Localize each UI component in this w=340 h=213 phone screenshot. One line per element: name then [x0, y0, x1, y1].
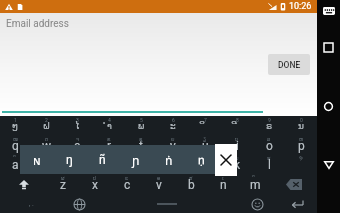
button[interactable]: ŋ: [53, 145, 86, 174]
staticText: o: [266, 139, 273, 153]
button[interactable]: Backspace: [271, 173, 317, 195]
button[interactable]: 9: [253, 116, 285, 135]
button[interactable]: ຮ: [253, 154, 285, 173]
button[interactable]: ຫ: [285, 135, 317, 154]
staticText: r: [107, 139, 112, 153]
button[interactable]: ຯ: [285, 154, 317, 173]
button[interactable]: ອ: [143, 173, 175, 195]
button[interactable]: ເ: [207, 173, 239, 195]
staticText: m: [250, 178, 261, 192]
button[interactable]: ຸ: [125, 154, 157, 173]
staticText: l: [268, 158, 271, 172]
button[interactable]: DONE: [268, 54, 310, 75]
staticText: ບ: [235, 136, 239, 142]
button[interactable]: ແ: [111, 173, 143, 195]
button[interactable]: ṅ: [152, 145, 185, 174]
staticText: t: [139, 139, 143, 153]
staticText: 6: [172, 117, 175, 123]
button[interactable]: 3: [62, 116, 93, 135]
staticText: ຜ: [61, 175, 65, 181]
staticText: ɴ: [33, 152, 41, 168]
button[interactable]: 5: [125, 116, 157, 135]
staticText: ຫ: [299, 136, 304, 142]
staticText: c: [124, 178, 131, 192]
button[interactable]: Back: [317, 154, 340, 175]
button[interactable]: ຖ: [189, 154, 221, 173]
button[interactable]: ລ: [253, 135, 285, 154]
button[interactable]: Hide keyboard: [317, 0, 340, 21]
button[interactable]: ຍ: [157, 135, 189, 154]
button[interactable]: ຕ: [31, 135, 62, 154]
staticText: x: [92, 178, 98, 192]
button[interactable]: ṇ: [185, 145, 218, 174]
button[interactable]: 7: [189, 116, 221, 135]
staticText: 9: [268, 117, 271, 123]
staticText: k: [234, 158, 241, 172]
staticText: ຍ: [171, 136, 175, 142]
button[interactable]: ຶ: [31, 154, 62, 173]
button[interactable]: 1: [0, 116, 31, 135]
staticText: ṇ: [198, 153, 205, 167]
staticText: 0: [300, 117, 303, 123]
button[interactable]: ມ: [221, 154, 253, 173]
button[interactable]: ຽ: [189, 135, 221, 154]
button[interactable]: ຈ: [62, 135, 93, 154]
staticText: ຊ: [139, 136, 143, 142]
button[interactable]: Enter: [277, 195, 317, 213]
button[interactable]: ັ: [62, 154, 93, 173]
staticText: ຕ: [45, 136, 49, 142]
staticText: 4: [108, 117, 111, 123]
button[interactable]: Emoji: [237, 195, 277, 213]
staticText: i: [236, 139, 239, 153]
staticText: ຳ: [107, 121, 112, 131]
staticText: ŋ: [66, 153, 73, 167]
staticText: ຣ: [266, 121, 273, 131]
button[interactable]: ູ: [93, 154, 125, 173]
button[interactable]: ຜ: [47, 173, 79, 195]
staticText: ມ: [235, 155, 239, 161]
button[interactable]: Recents: [317, 37, 340, 58]
button[interactable]: ɲ: [119, 145, 152, 174]
button[interactable]: 6: [157, 116, 189, 135]
staticText: ຝ: [43, 121, 50, 131]
staticText: 10:26: [289, 1, 312, 12]
staticText: ຂ: [107, 136, 111, 142]
button[interactable]: ປ: [79, 173, 111, 195]
staticText: v: [156, 178, 162, 192]
button[interactable]: Space: [96, 195, 237, 213]
button[interactable]: ñ: [86, 145, 119, 174]
button[interactable]: ບ: [221, 135, 253, 154]
button[interactable]: Shift: [0, 173, 47, 195]
button[interactable]: ົ: [239, 173, 271, 195]
button[interactable]: ສ: [175, 173, 207, 195]
button[interactable]: 0: [285, 116, 317, 135]
button[interactable]: Home: [317, 96, 340, 117]
staticText: n: [220, 178, 227, 192]
button[interactable]: ໜ: [0, 135, 31, 154]
button[interactable]: ົ: [0, 154, 31, 173]
button[interactable]: Close: [215, 144, 237, 176]
button[interactable]: 2: [31, 116, 62, 135]
staticText: ອ: [157, 175, 161, 181]
staticText: 7: [204, 117, 207, 123]
staticText: y: [170, 139, 176, 153]
button[interactable]: 8: [221, 116, 253, 135]
button[interactable]: ɴ: [20, 145, 53, 174]
staticText: p: [298, 139, 305, 153]
staticText: a: [12, 158, 19, 172]
staticText: ɲ: [132, 152, 140, 168]
staticText: ñ: [99, 153, 106, 167]
button[interactable]: ຄ: [157, 154, 189, 173]
staticText: ໜ: [13, 136, 19, 142]
button[interactable]: ຂ: [93, 135, 125, 154]
button[interactable]: 4: [93, 116, 125, 135]
staticText: g: [138, 158, 145, 172]
button[interactable]: ຊ: [125, 135, 157, 154]
button[interactable]: Change language: [62, 195, 96, 213]
staticText: ຽ: [203, 136, 207, 142]
